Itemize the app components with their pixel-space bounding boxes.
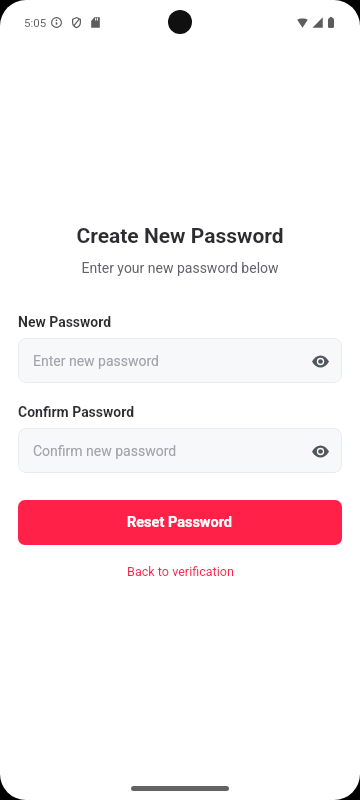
staticText: Confirm new password <box>33 443 177 459</box>
button[interactable]: Enter new password <box>18 338 342 383</box>
staticText: 5:05 <box>24 16 47 29</box>
staticText: Back to verification <box>127 564 234 579</box>
staticText: New Password <box>18 314 112 330</box>
button[interactable]: Show password <box>308 349 332 373</box>
button[interactable]: Confirm new password <box>18 428 342 473</box>
staticText: Enter your new password below <box>0 260 360 276</box>
button[interactable]: Reset Password <box>18 500 342 545</box>
staticText: Reset Password <box>127 514 233 531</box>
staticText: Confirm Password <box>18 404 135 420</box>
button[interactable]: Back to verification <box>115 558 246 585</box>
button[interactable]: Show password <box>308 439 332 463</box>
staticText: Enter new password <box>33 353 159 369</box>
staticText: Create New Password <box>0 224 360 249</box>
